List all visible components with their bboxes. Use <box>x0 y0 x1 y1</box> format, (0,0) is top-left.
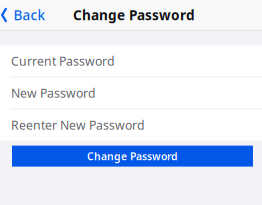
staticText: New Password <box>11 85 96 101</box>
staticText: Current Password <box>11 53 115 69</box>
staticText: Change Password <box>73 6 195 24</box>
button[interactable]: Current Password <box>0 46 262 78</box>
staticText: Change Password <box>87 149 178 163</box>
button[interactable]: Back <box>0 0 51 30</box>
staticText: Back <box>14 6 46 24</box>
button[interactable]: Reenter New Password <box>0 110 262 141</box>
button[interactable]: New Password <box>0 78 262 110</box>
button[interactable]: Change Password <box>12 146 253 167</box>
staticText: Reenter New Password <box>11 117 145 133</box>
